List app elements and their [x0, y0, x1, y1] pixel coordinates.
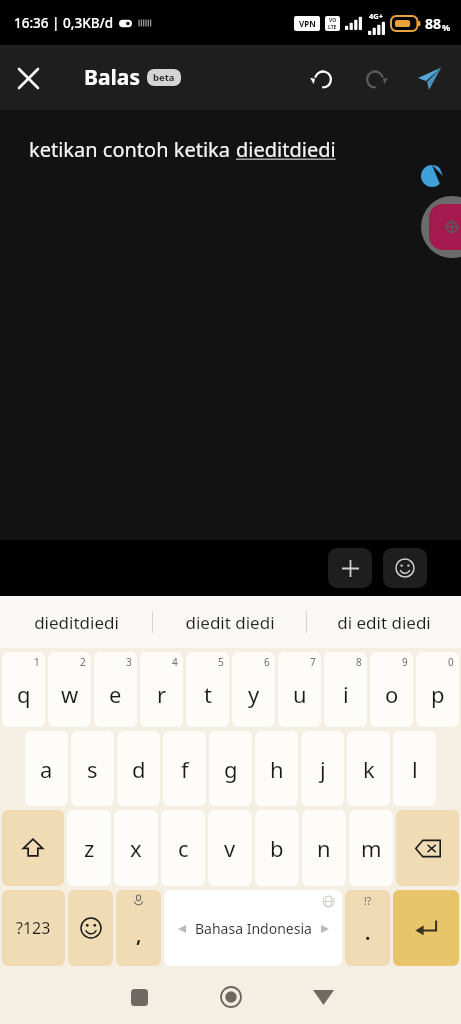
staticText: LTE [328, 24, 337, 31]
button[interactable]: z [67, 810, 111, 886]
button[interactable]: r [140, 652, 183, 727]
button[interactable]: di edit diedi [307, 596, 461, 648]
staticText: 4 [172, 655, 178, 669]
staticText: f [181, 754, 189, 784]
staticText: q [17, 679, 31, 709]
button[interactable]: Home [185, 970, 277, 1024]
button[interactable]: Send [401, 50, 457, 106]
button[interactable]: . [345, 890, 390, 966]
button[interactable]: Shift [2, 810, 64, 886]
button[interactable]: s [71, 731, 114, 806]
staticText: 3 [126, 655, 132, 669]
button[interactable]: i [324, 652, 367, 727]
button[interactable]: Undo [297, 52, 349, 104]
button[interactable]: b [255, 810, 299, 886]
button[interactable]: Emoji [68, 890, 113, 966]
staticText: k [363, 754, 375, 784]
button[interactable]: o [370, 652, 413, 727]
staticText: diedit diedi [185, 611, 275, 634]
staticText: x [130, 833, 142, 863]
staticText: z [84, 833, 95, 863]
staticText: !? [364, 894, 372, 908]
button[interactable]: f [163, 731, 206, 806]
staticText: g [224, 754, 238, 784]
staticText: ?123 [16, 917, 51, 939]
button[interactable]: Emoji [383, 548, 427, 588]
button[interactable]: p [416, 652, 459, 727]
staticText: Balas [84, 63, 140, 92]
staticText: r [157, 679, 167, 709]
button[interactable]: Hide keyboard [277, 970, 369, 1024]
button[interactable]: w [48, 652, 91, 727]
staticText: di edit diedi [337, 611, 431, 634]
button[interactable]: , [116, 890, 161, 966]
staticText: o [385, 679, 399, 709]
button[interactable]: c [161, 810, 205, 886]
button[interactable]: Add attachment [328, 548, 372, 588]
staticText: dieditdiedi [34, 611, 119, 634]
button[interactable]: n [302, 810, 346, 886]
staticText: 5 [218, 655, 224, 669]
staticText: t [204, 679, 212, 709]
staticText: % [442, 21, 451, 33]
staticText: h [270, 754, 284, 784]
staticText: w [61, 679, 79, 709]
staticText: 7 [310, 655, 316, 669]
staticText: n [317, 833, 331, 863]
button[interactable]: Close [0, 50, 56, 106]
staticText: 9 [402, 655, 408, 669]
staticText: p [431, 679, 445, 709]
button[interactable]: dieditdiedi [0, 596, 153, 648]
button[interactable]: t [186, 652, 229, 727]
staticText: v [224, 833, 236, 863]
staticText: i [343, 679, 349, 709]
button[interactable]: j [301, 731, 344, 806]
button[interactable]: diedit diedi [153, 596, 307, 648]
button[interactable]: l [393, 731, 436, 806]
staticText: u [293, 679, 307, 709]
staticText: 1 [34, 655, 40, 669]
button[interactable]: a [25, 731, 68, 806]
staticText: e [109, 679, 122, 709]
button[interactable]: v [208, 810, 252, 886]
staticText: a [40, 754, 53, 784]
staticText: 88 [425, 14, 442, 33]
button[interactable]: Backspace [396, 810, 459, 886]
staticText: . [365, 920, 371, 946]
button[interactable]: ?123 [2, 890, 65, 966]
button[interactable]: h [255, 731, 298, 806]
staticText: 16:36 | 0,3KB/d [14, 14, 114, 32]
button[interactable]: y [232, 652, 275, 727]
staticText: l [412, 754, 418, 784]
staticText: 6 [264, 655, 270, 669]
button[interactable]: e [94, 652, 137, 727]
staticText: ketikan contoh ketika [29, 136, 236, 163]
staticText: VO [329, 17, 337, 24]
staticText: j [320, 754, 326, 784]
button[interactable]: Enter [393, 890, 459, 966]
staticText: Bahasa Indonesia [195, 919, 312, 938]
staticText: b [270, 833, 284, 863]
button[interactable]: Recents [93, 970, 185, 1024]
staticText: beta [153, 71, 175, 84]
staticText: 4G+ [369, 11, 384, 21]
staticText: d [132, 754, 146, 784]
button[interactable]: Space [164, 890, 342, 966]
button[interactable]: k [347, 731, 390, 806]
button[interactable]: q [2, 652, 45, 727]
button[interactable]: m [349, 810, 393, 886]
button[interactable]: Floating shortcut [421, 196, 461, 258]
staticText: s [87, 754, 98, 784]
button[interactable]: d [117, 731, 160, 806]
staticText: 0 [448, 655, 454, 669]
staticText: m [361, 833, 382, 863]
staticText: , [136, 922, 142, 948]
button[interactable]: u [278, 652, 321, 727]
button[interactable]: Redo [349, 52, 401, 104]
staticText: VPN [299, 18, 316, 29]
staticText: y [248, 679, 260, 709]
staticText: 8 [356, 655, 362, 669]
button[interactable]: g [209, 731, 252, 806]
button[interactable]: x [114, 810, 158, 886]
staticText: c [178, 833, 189, 863]
